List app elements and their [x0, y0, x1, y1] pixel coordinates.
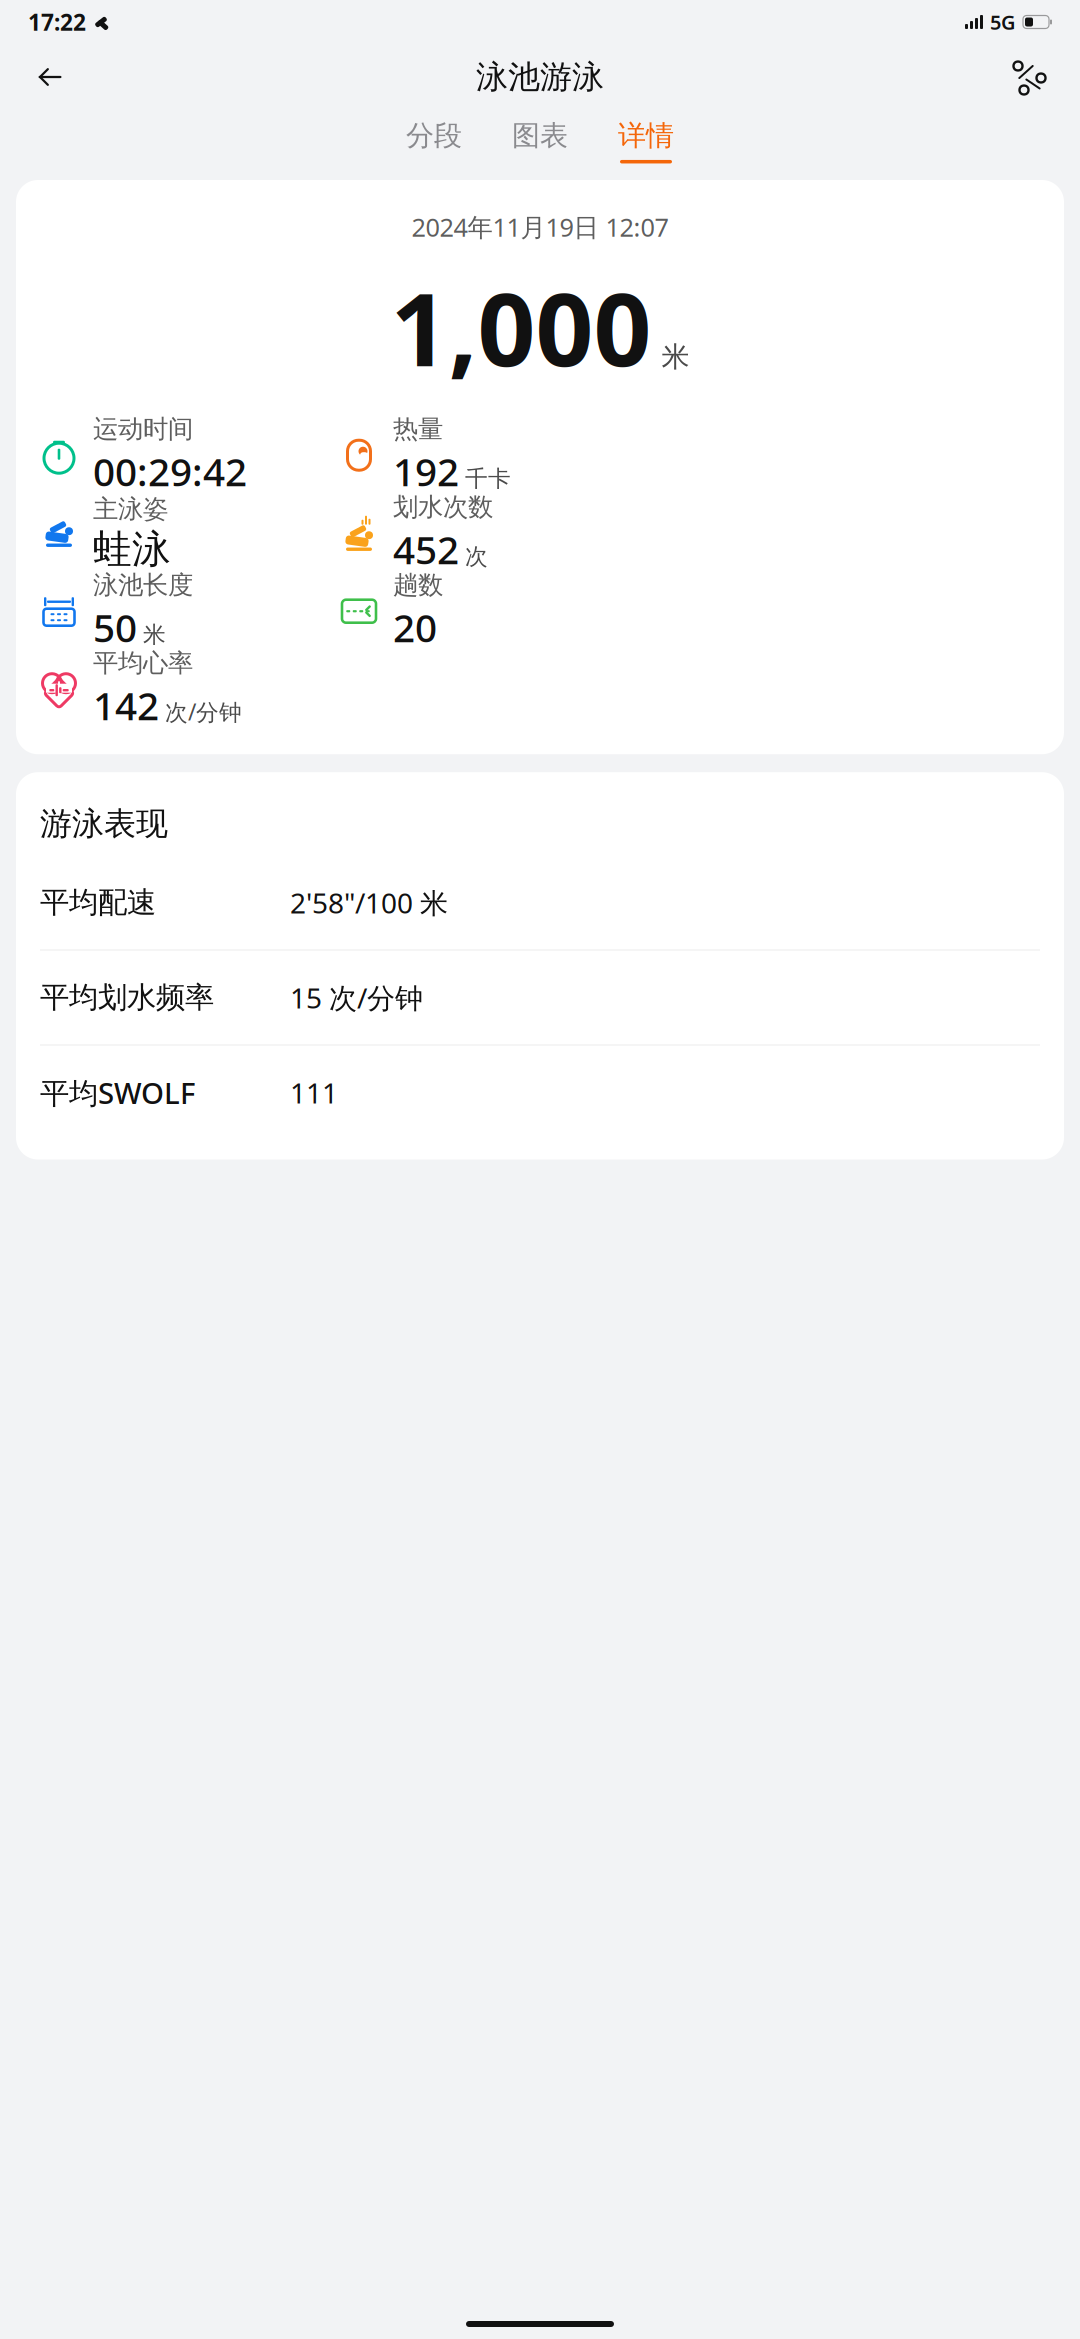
staticText: 5G	[990, 9, 1016, 35]
staticText: 泳池长度	[93, 569, 193, 601]
staticText: 452	[393, 524, 459, 575]
staticText: 1,000	[390, 260, 651, 394]
staticText: 111	[290, 1074, 338, 1111]
staticText: 划水次数	[393, 491, 493, 523]
staticText: 泳池游泳	[476, 57, 604, 97]
staticText: 17:22	[28, 7, 86, 37]
button[interactable]: 分段	[398, 119, 470, 163]
staticText: 蛙泳	[93, 525, 171, 573]
staticText: 15 次/分钟	[290, 979, 423, 1016]
staticText: 平均划水频率	[40, 979, 214, 1015]
staticText: 2024年11月19日 12:07	[411, 210, 668, 244]
staticText: 平均配速	[40, 884, 156, 920]
staticText: 平均SWOLF	[40, 1073, 195, 1112]
staticText: 分段	[406, 119, 462, 153]
staticText: 千卡	[465, 465, 511, 493]
button[interactable]: 分享	[1004, 51, 1056, 103]
staticText: 20	[393, 602, 437, 653]
staticText: 142	[93, 680, 159, 731]
staticText: 米	[661, 340, 689, 374]
button[interactable]: 详情	[610, 119, 682, 163]
staticText: 热量	[393, 413, 443, 445]
staticText: 图表	[512, 119, 568, 153]
staticText: 详情	[618, 119, 674, 153]
staticText: 游泳表现	[40, 804, 168, 843]
staticText: 运动时间	[93, 413, 193, 445]
staticText: 平均心率	[93, 647, 193, 679]
button[interactable]: 返回	[24, 51, 76, 103]
staticText: 192	[393, 446, 459, 497]
staticText: 2'58"/100 米	[290, 884, 448, 921]
button[interactable]: 图表	[504, 119, 576, 163]
staticText: 次/分钟	[165, 697, 242, 727]
staticText: 米	[143, 621, 166, 649]
staticText: 50	[93, 602, 137, 653]
staticText: 趟数	[393, 569, 443, 601]
staticText: 主泳姿	[93, 493, 168, 524]
staticText: 次	[465, 543, 488, 571]
staticText: 00:29:42	[93, 446, 247, 497]
